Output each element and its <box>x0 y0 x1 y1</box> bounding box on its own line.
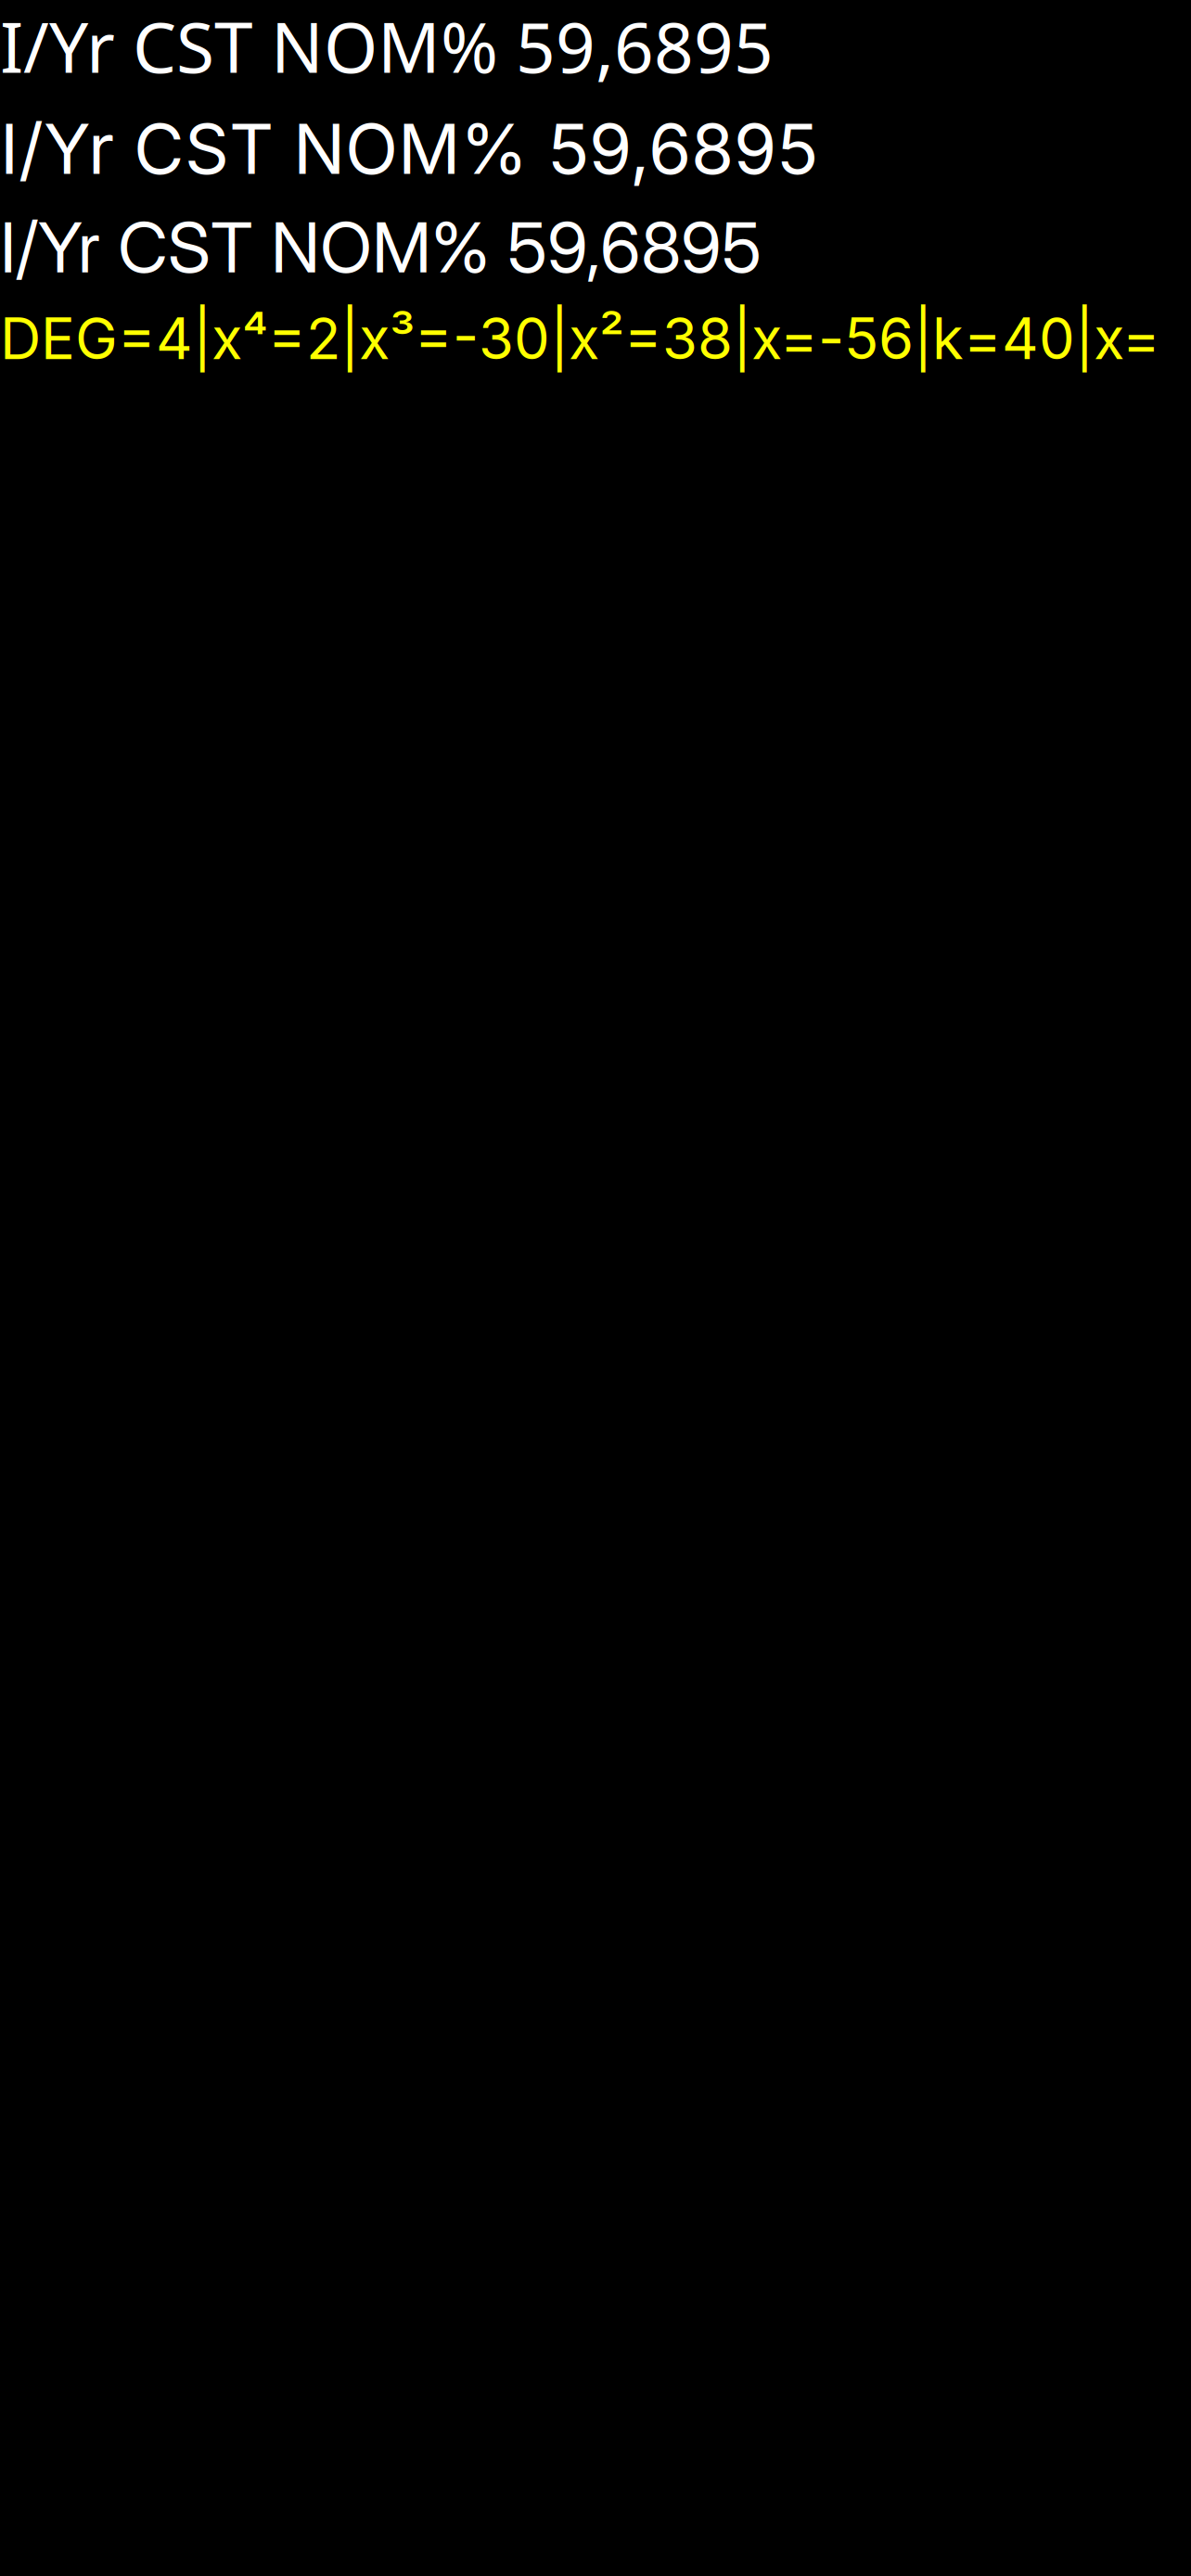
staticText: I/Yr CST NOM% 59,6895 <box>0 107 818 191</box>
staticText: DEG=4|x⁴=2|x³=-30|x²=38|x=-56|k=40|x= <box>0 304 1160 373</box>
staticText: I/Yr CST NOM% 59,6895 <box>0 205 762 289</box>
staticText: I/Yr CST NOM% 59,6895 <box>0 0 774 92</box>
